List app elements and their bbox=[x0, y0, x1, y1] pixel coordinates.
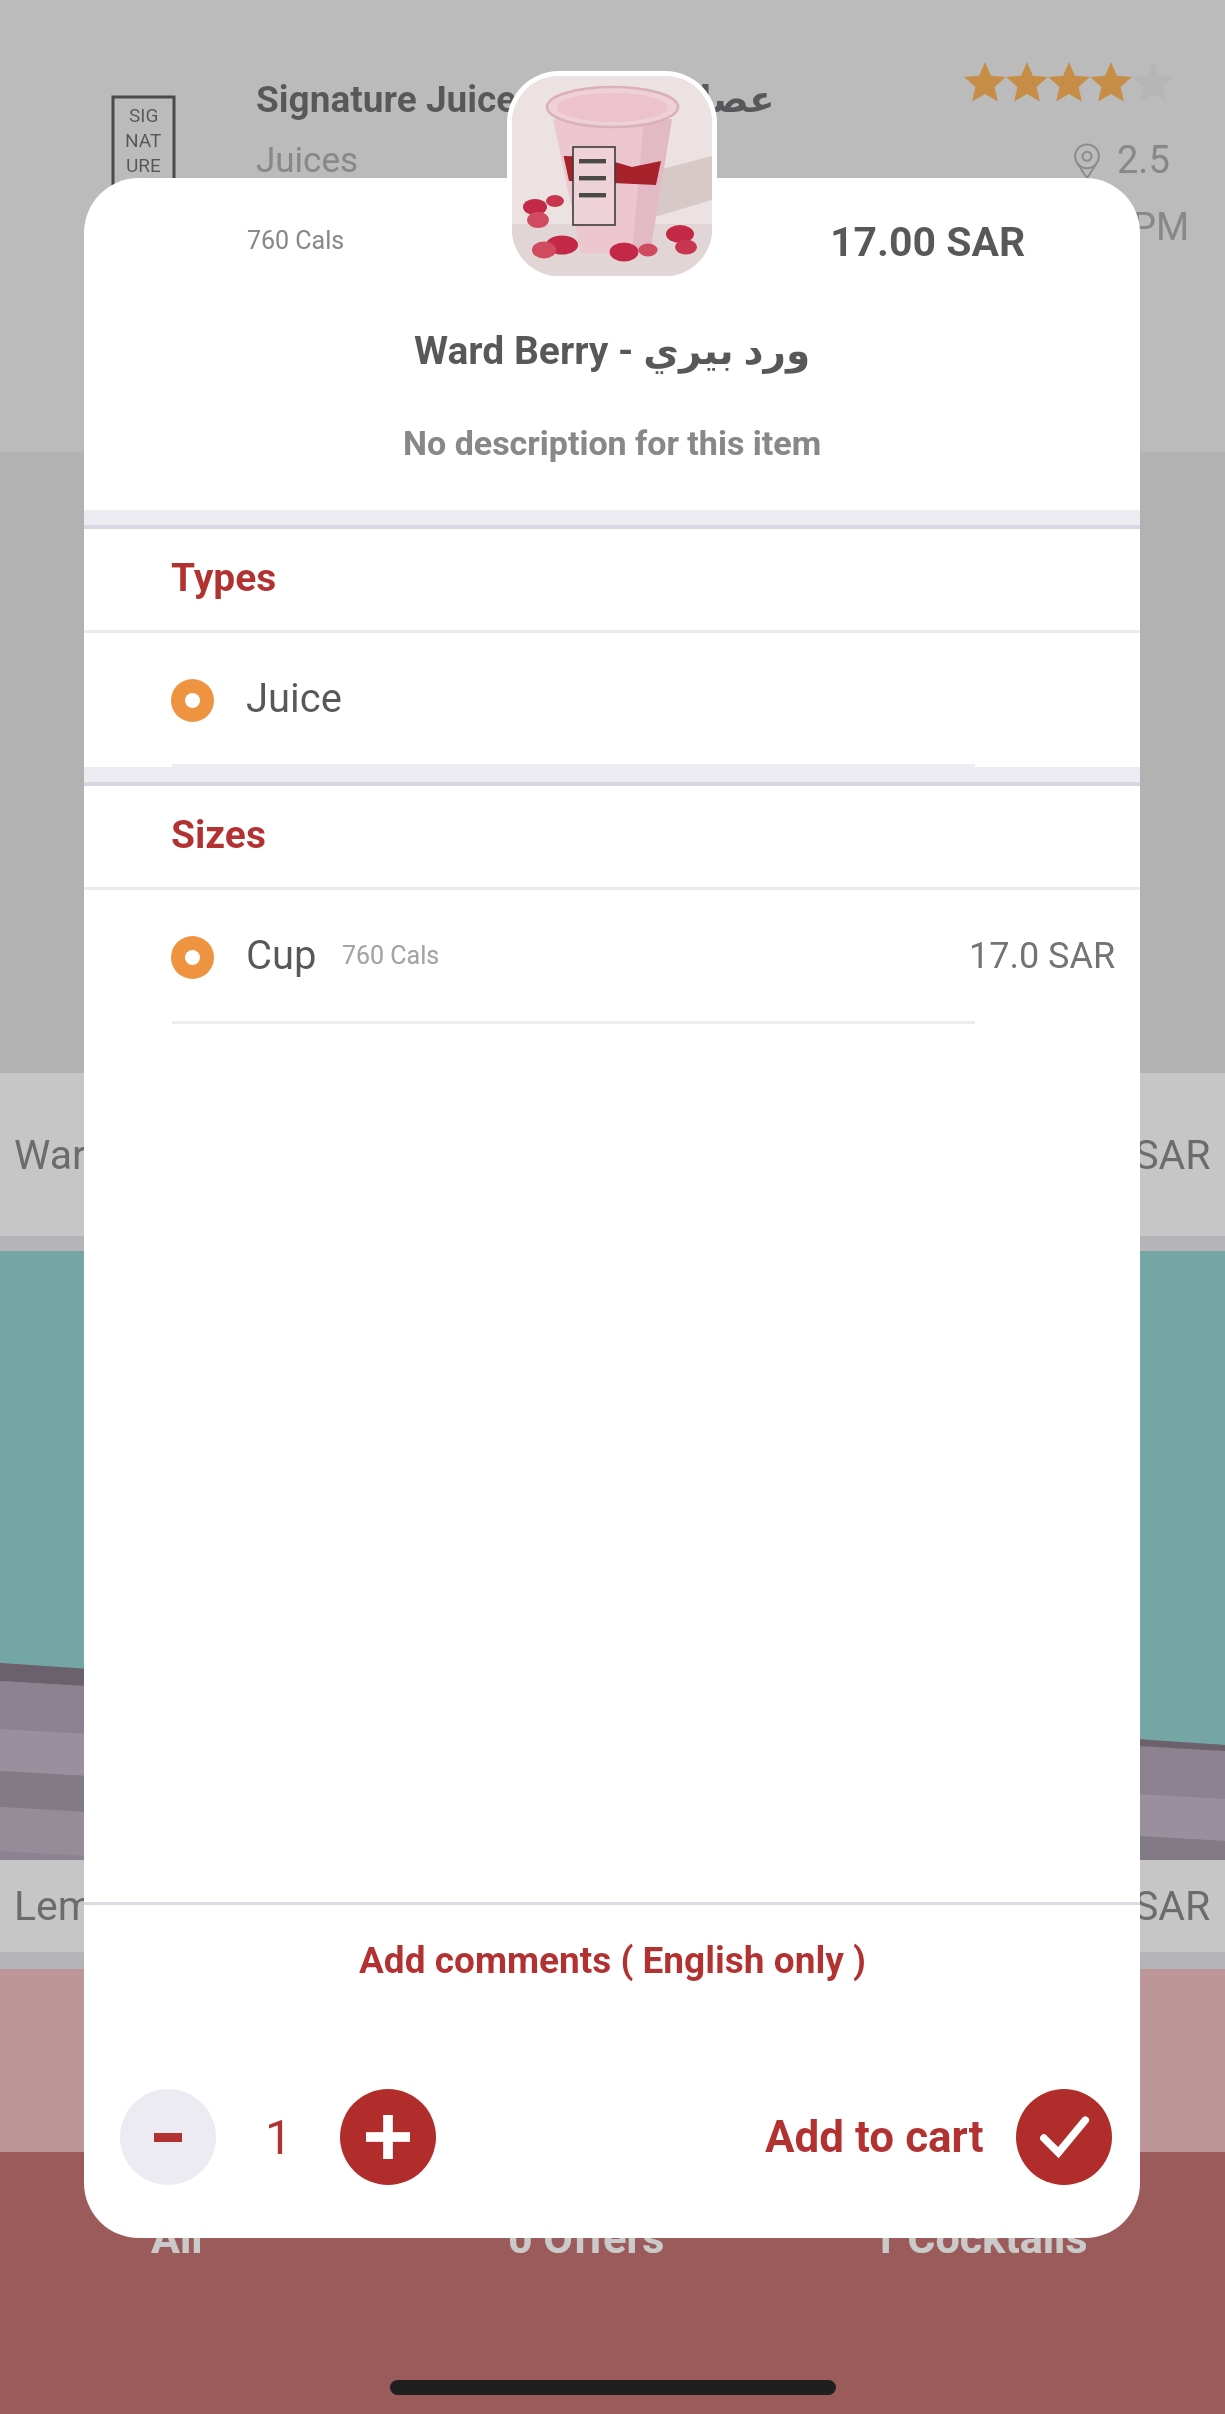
staticText: SAR bbox=[1134, 1882, 1211, 1930]
button[interactable]: All bbox=[151, 2213, 203, 2263]
staticText: SIG bbox=[129, 104, 159, 126]
staticText: 2.5 bbox=[1117, 138, 1170, 183]
staticText: NAT bbox=[125, 129, 162, 151]
staticText: 1 bbox=[265, 2109, 292, 2165]
staticText: No description for this item bbox=[403, 423, 822, 463]
staticText: Types bbox=[171, 555, 277, 601]
button[interactable]: Add comments ( English only ) bbox=[84, 1905, 1140, 2036]
staticText: 760 Cals bbox=[342, 941, 440, 970]
button[interactable]: Increase quantity bbox=[340, 2089, 436, 2185]
staticText: Signature Juices bbox=[256, 78, 536, 121]
staticText: Cup bbox=[246, 932, 317, 979]
staticText: Ward Berry bbox=[14, 1131, 214, 1179]
button[interactable]: Cup bbox=[84, 890, 1140, 1024]
staticText: Juice bbox=[246, 675, 342, 722]
staticText: Ward Berry - ورد بيري bbox=[414, 328, 811, 374]
staticText: 17.0 SAR bbox=[969, 935, 1116, 977]
staticText: عصائر bbox=[662, 78, 775, 121]
staticText: PM bbox=[1132, 205, 1190, 250]
staticText: Lemon bbox=[14, 1882, 140, 1930]
button[interactable]: Juice bbox=[84, 633, 1140, 767]
staticText: 760 Cals bbox=[247, 226, 345, 255]
staticText: Add comments ( English only ) bbox=[359, 1939, 866, 1982]
button[interactable]: Decrease quantity bbox=[120, 2089, 216, 2185]
staticText: URE bbox=[126, 154, 161, 176]
staticText: 17.00 SAR bbox=[830, 218, 1026, 266]
staticText: Juices bbox=[256, 140, 359, 181]
button[interactable]: 0 Offers bbox=[508, 2213, 665, 2263]
staticText: Add to cart bbox=[765, 2111, 984, 2163]
button[interactable]: 1 Cocktails bbox=[872, 2213, 1088, 2263]
staticText: Sizes bbox=[171, 812, 266, 858]
button[interactable]: Add to cart bbox=[765, 2089, 1112, 2185]
staticText: 17.00 SAR bbox=[1021, 1131, 1211, 1179]
